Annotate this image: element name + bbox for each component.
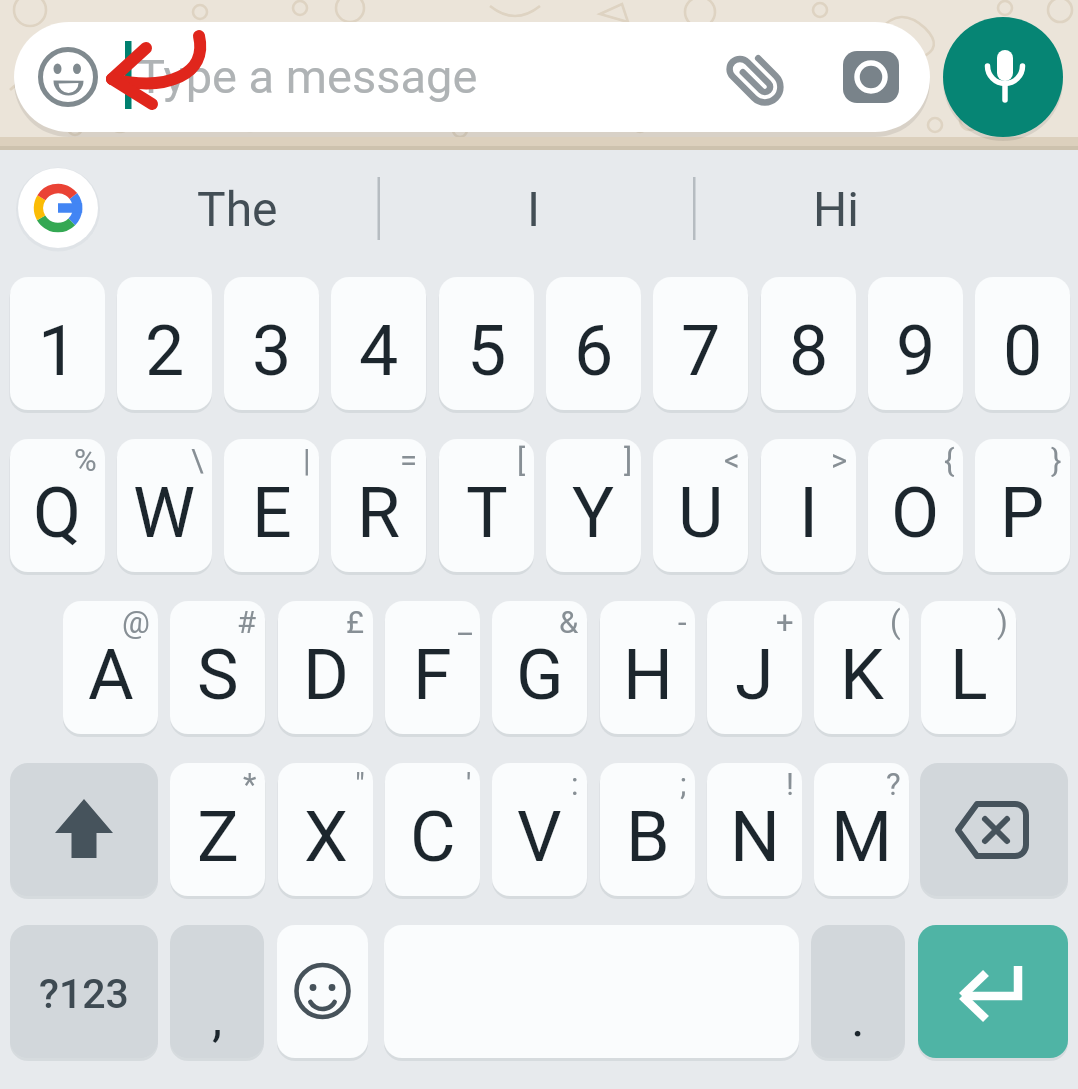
staticText: F [413, 634, 452, 716]
button[interactable]: H [600, 601, 695, 734]
staticText: _ [458, 604, 472, 640]
button[interactable]: D [278, 601, 373, 734]
button[interactable]: 7 [653, 277, 748, 410]
staticText: 0 [1003, 310, 1043, 392]
staticText: K [840, 634, 884, 716]
staticText: J [735, 634, 774, 716]
button[interactable]: B [600, 763, 695, 896]
button[interactable] [918, 925, 1068, 1058]
staticText: N [730, 796, 780, 878]
staticText: Hi [813, 181, 859, 237]
staticText: ' [466, 766, 472, 802]
staticText: M [831, 796, 893, 878]
button[interactable]: C [385, 763, 480, 896]
staticText: - [678, 604, 687, 640]
staticText: R [357, 472, 401, 554]
button[interactable]: I [761, 439, 856, 572]
staticText: B [626, 796, 670, 878]
button[interactable] [920, 763, 1068, 896]
staticText: : [571, 766, 579, 802]
staticText: 9 [896, 310, 936, 392]
staticText: 3 [252, 310, 292, 392]
staticText: Q [33, 472, 82, 554]
button[interactable]: 3 [224, 277, 319, 410]
staticText: | [303, 442, 311, 478]
button[interactable]: N [707, 763, 802, 896]
button[interactable]: 9 [868, 277, 963, 410]
button[interactable]: J [707, 601, 802, 734]
staticText: The [197, 181, 278, 237]
button[interactable]: 0 [975, 277, 1070, 410]
button[interactable]: Z [170, 763, 265, 896]
button[interactable] [10, 763, 158, 896]
staticText: D [303, 634, 349, 716]
button[interactable]: 1 [10, 277, 105, 410]
staticText: C [410, 796, 456, 878]
button[interactable]: O [868, 439, 963, 572]
button[interactable]: . [811, 925, 905, 1058]
button[interactable]: S [170, 601, 265, 734]
button[interactable] [14, 22, 930, 132]
staticText: 6 [574, 310, 614, 392]
button[interactable]: , [170, 925, 264, 1058]
staticText: ) [997, 604, 1008, 640]
button[interactable]: Y [546, 439, 641, 572]
button[interactable]: X [278, 763, 373, 896]
staticText: P [1000, 472, 1045, 554]
staticText: 7 [681, 310, 721, 392]
staticText: G [516, 634, 564, 716]
button[interactable]: 8 [761, 277, 856, 410]
button[interactable] [943, 17, 1063, 137]
button[interactable]: G [492, 601, 587, 734]
staticText: = [400, 442, 418, 478]
staticText: L [950, 634, 988, 716]
staticText: X [304, 796, 348, 878]
staticText: 5 [467, 310, 507, 392]
button[interactable]: U [653, 439, 748, 572]
staticText: ?123 [39, 970, 129, 1018]
button[interactable]: Q [10, 439, 105, 572]
button[interactable]: K [814, 601, 909, 734]
staticText: % [74, 442, 97, 478]
button[interactable]: R [331, 439, 426, 572]
staticText: £ [346, 604, 365, 640]
staticText: W [133, 472, 196, 554]
staticText: 4 [359, 310, 399, 392]
button[interactable]: 4 [331, 277, 426, 410]
staticText: Y [572, 472, 615, 554]
button[interactable]: 5 [439, 277, 534, 410]
staticText: ? [886, 766, 901, 802]
staticText: 2 [145, 310, 185, 392]
button[interactable] [277, 925, 368, 1058]
staticText: T [466, 472, 508, 554]
button[interactable]: ?123 [10, 925, 158, 1058]
button[interactable]: 2 [117, 277, 212, 410]
staticText: " [355, 766, 365, 802]
button[interactable]: F [385, 601, 480, 734]
staticText: { [944, 442, 955, 478]
staticText: S [197, 634, 239, 716]
button[interactable]: P [975, 439, 1070, 572]
button[interactable]: E [224, 439, 319, 572]
staticText: I [527, 181, 541, 237]
staticText: @ [122, 604, 150, 640]
staticText: + [776, 604, 794, 640]
staticText: E [252, 472, 292, 554]
staticText: O [891, 472, 940, 554]
button[interactable]: M [814, 763, 909, 896]
staticText: 8 [789, 310, 829, 392]
button[interactable]: V [492, 763, 587, 896]
staticText: \ [191, 442, 204, 478]
staticText: A [88, 634, 134, 716]
staticText: [ [517, 442, 526, 478]
staticText: ] [624, 442, 633, 478]
button[interactable]: T [439, 439, 534, 572]
button[interactable]: 6 [546, 277, 641, 410]
staticText: Z [197, 796, 239, 878]
button[interactable]: W [117, 439, 212, 572]
staticText: U [678, 472, 724, 554]
staticText: * [243, 766, 257, 802]
button[interactable]: L [921, 601, 1016, 734]
button[interactable]: A [63, 601, 158, 734]
